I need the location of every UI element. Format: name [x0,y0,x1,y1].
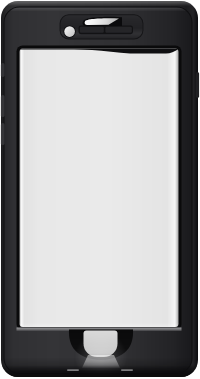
button[interactable]: Black waterproof phone case product phot… [0,0,200,379]
